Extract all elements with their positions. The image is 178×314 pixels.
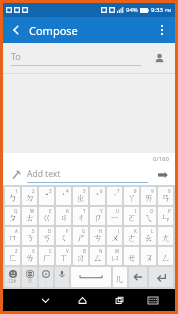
- staticText: ㄒ: [59, 252, 69, 263]
- button[interactable]: ㄡ: [141, 247, 156, 265]
- staticText: B: [83, 248, 86, 254]
- staticText: N: [99, 248, 103, 254]
- button[interactable]: Send: [154, 167, 170, 183]
- button[interactable]: F: [56, 227, 71, 245]
- button[interactable]: Recent apps: [101, 289, 138, 311]
- staticText: To: [11, 50, 21, 62]
- button[interactable]: 6: [90, 187, 105, 205]
- button[interactable]: V: [56, 247, 71, 265]
- staticText: ㄈ: [8, 252, 18, 263]
- button[interactable]: 4: [56, 187, 71, 205]
- staticText: ㄧ: [110, 212, 120, 223]
- staticText: S: [32, 228, 35, 234]
- staticText: H: [99, 228, 103, 234]
- staticText: ㄚ: [127, 192, 137, 203]
- staticText: 。: [60, 278, 65, 284]
- button[interactable]: Home: [64, 289, 101, 311]
- staticText: ㄎ: [42, 232, 52, 243]
- button[interactable]: G: [73, 227, 88, 245]
- button[interactable]: E: [39, 207, 54, 225]
- staticText: 8: [134, 188, 137, 194]
- staticText: W: [30, 208, 35, 214]
- button[interactable]: C: [39, 247, 54, 265]
- staticText: ㄇ: [8, 232, 18, 243]
- button[interactable]: W: [22, 207, 37, 225]
- button[interactable]: ㄥ: [158, 247, 173, 265]
- button[interactable]: Attach: [8, 167, 24, 183]
- staticText: R: [66, 208, 69, 214]
- button[interactable]: 8: [124, 187, 139, 205]
- button[interactable]: H: [90, 227, 105, 245]
- button[interactable]: ,: [39, 267, 53, 287]
- staticText: ㄟ: [144, 212, 154, 223]
- staticText: U: [116, 208, 120, 214]
- button[interactable]: Backspace: [129, 267, 147, 287]
- staticText: 3: [49, 188, 52, 194]
- staticText: ㄞ: [144, 192, 154, 203]
- button[interactable]: 2: [22, 187, 37, 205]
- button[interactable]: 5: [73, 187, 88, 205]
- button[interactable]: T: [73, 207, 88, 225]
- button[interactable]: U: [107, 207, 122, 225]
- staticText: 7: [117, 188, 120, 194]
- button[interactable]: Pick contact: [151, 50, 167, 66]
- staticText: ㄌ: [25, 252, 35, 263]
- button[interactable]: 7: [107, 187, 122, 205]
- button[interactable]: 3: [39, 187, 54, 205]
- staticText: 0: [168, 188, 171, 194]
- staticText: ㄣ: [161, 212, 171, 223]
- button[interactable]: Hide keyboard: [26, 289, 64, 311]
- button[interactable]: 9: [141, 187, 156, 205]
- button[interactable]: Keyboard layout: [138, 289, 168, 311]
- button[interactable]: K: [124, 227, 139, 245]
- button[interactable]: 12#: [5, 267, 20, 287]
- button[interactable]: D: [39, 227, 54, 245]
- staticText: 4: [66, 188, 69, 194]
- button[interactable]: O: [141, 207, 156, 225]
- staticText: ㄗ: [93, 212, 103, 223]
- button[interactable]: L: [141, 227, 156, 245]
- button[interactable]: 1: [5, 187, 20, 205]
- button[interactable]: Y: [90, 207, 105, 225]
- button[interactable]: ㄝ: [124, 247, 139, 265]
- button[interactable]: Q: [5, 207, 20, 225]
- staticText: ㄔ: [76, 212, 86, 223]
- button[interactable]: ㄤ: [158, 227, 173, 245]
- button[interactable]: X: [22, 247, 37, 265]
- button[interactable]: P: [158, 207, 173, 225]
- staticText: ㄙ: [93, 252, 103, 263]
- staticText: ㄤ: [161, 232, 171, 243]
- button[interactable]: Enter: [149, 267, 173, 287]
- staticText: ㄥ: [161, 252, 171, 263]
- staticText: ㄉ: [25, 192, 35, 203]
- staticText: C: [49, 248, 52, 254]
- button[interactable]: A: [5, 227, 20, 245]
- button[interactable]: B: [73, 247, 88, 265]
- button[interactable]: 。: [55, 267, 69, 287]
- staticText: L: [151, 228, 154, 234]
- staticText: O: [150, 208, 154, 214]
- button[interactable]: J: [107, 227, 122, 245]
- button[interactable]: 0: [158, 187, 173, 205]
- button[interactable]: More options: [149, 17, 175, 43]
- staticText: ㄐ: [59, 212, 69, 223]
- button[interactable]: S: [22, 227, 37, 245]
- button[interactable]: ˊ: [113, 267, 127, 287]
- staticText: ㄜ: [127, 232, 137, 243]
- staticText: P: [168, 208, 171, 214]
- button[interactable]: 注: [22, 267, 37, 287]
- button[interactable]: Z: [5, 247, 20, 265]
- staticText: 2: [32, 188, 35, 194]
- button[interactable]: M: [107, 247, 122, 265]
- button[interactable]: I: [124, 207, 139, 225]
- button[interactable]: Back: [3, 17, 29, 43]
- staticText: Z: [15, 248, 18, 254]
- staticText: ㄍ: [42, 212, 52, 223]
- staticText: ㄑ: [59, 232, 69, 243]
- button[interactable]: R: [56, 207, 71, 225]
- staticText: 94%: [126, 6, 138, 14]
- button[interactable]: N: [90, 247, 105, 265]
- button[interactable]: Space: [71, 267, 111, 287]
- staticText: ㄊ: [25, 212, 35, 223]
- staticText: ㄦ: [115, 273, 125, 284]
